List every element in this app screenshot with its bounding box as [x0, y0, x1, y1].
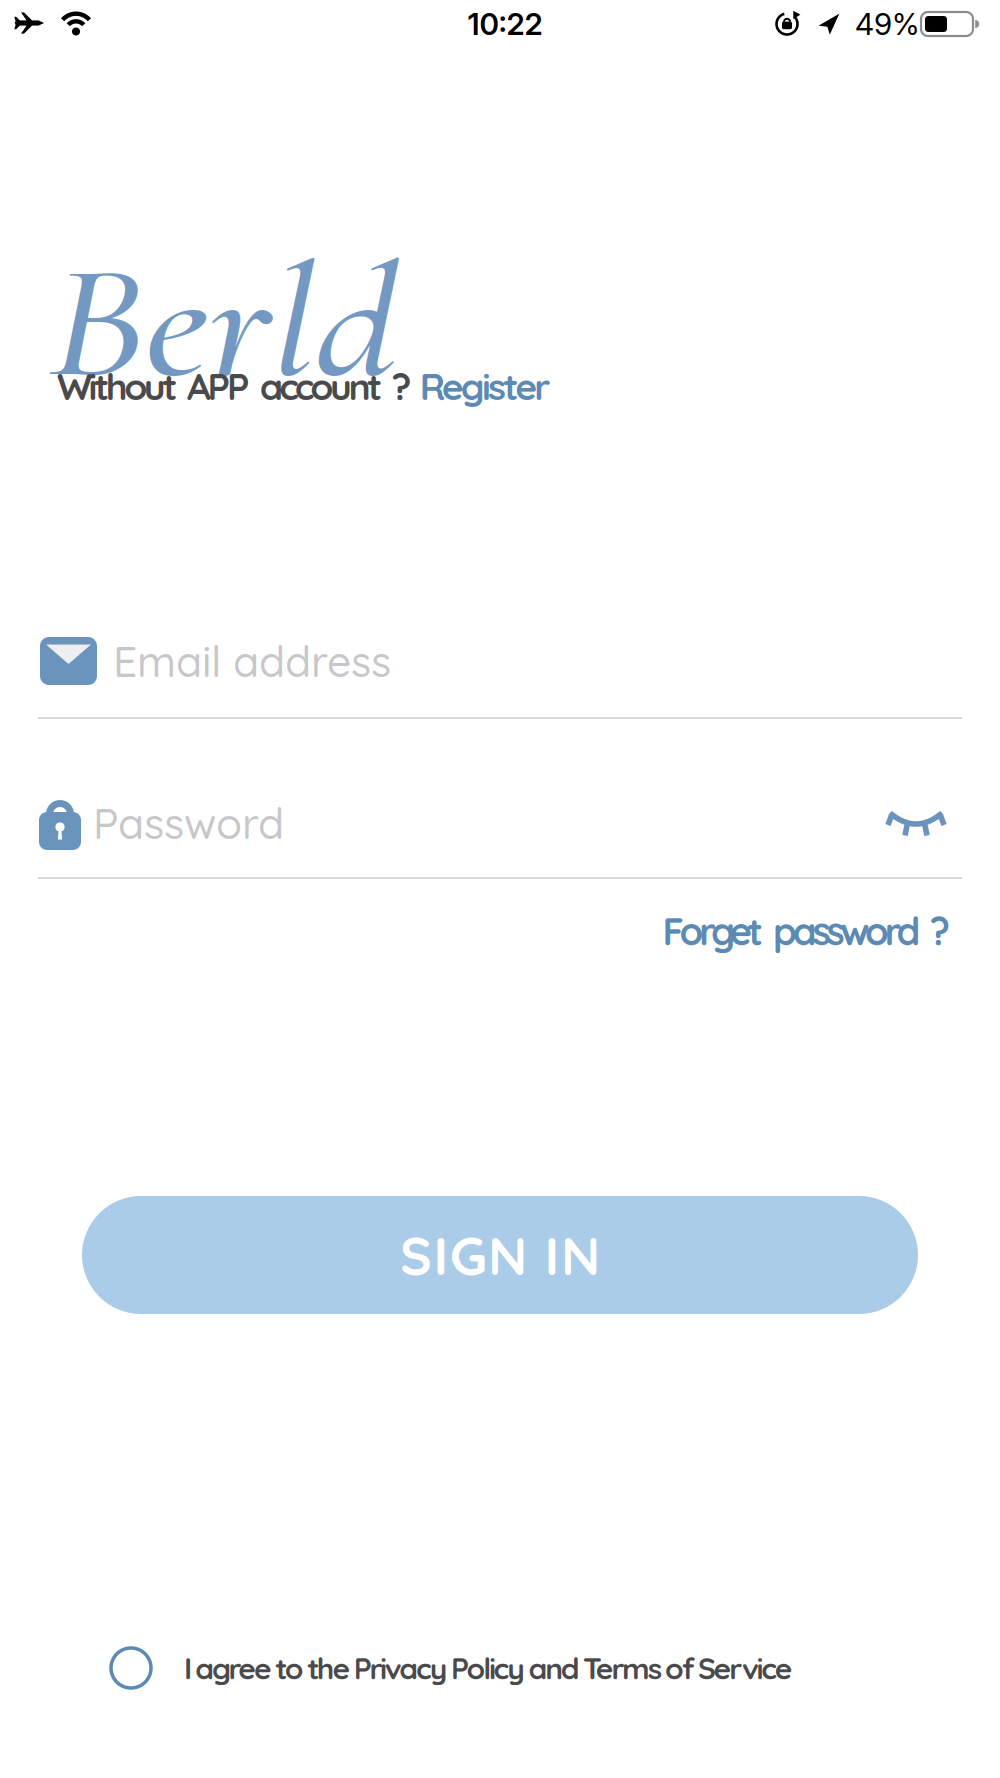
- staticText: Email address: [113, 634, 391, 688]
- button[interactable]: Password: [0, 783, 1000, 863]
- button[interactable]: Show password: [877, 796, 955, 850]
- staticText: Berld: [48, 226, 353, 420]
- button[interactable]: Agree to terms: [111, 1648, 151, 1688]
- staticText: 10:22: [467, 6, 542, 42]
- button[interactable]: SIGN IN: [82, 1196, 918, 1314]
- button[interactable]: Forget password ?: [663, 907, 950, 955]
- staticText: I agree to the Privacy Policy and Terms …: [184, 1649, 793, 1687]
- staticText: 49%: [855, 6, 919, 42]
- staticText: Password: [93, 796, 284, 850]
- staticText: SIGN IN: [400, 1222, 600, 1288]
- button[interactable]: Email address: [0, 621, 1000, 701]
- staticText: Forget password ?: [663, 907, 950, 955]
- staticText: Register: [420, 363, 550, 409]
- button[interactable]: Register: [420, 363, 550, 409]
- staticText: Without APP account ?: [57, 363, 412, 409]
